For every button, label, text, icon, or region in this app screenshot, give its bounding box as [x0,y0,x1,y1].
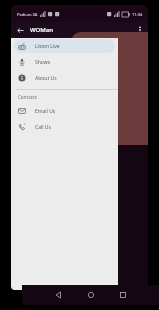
button[interactable]: Shows [14,55,115,69]
staticText: Shows [35,59,51,66]
staticText: About Us [35,75,57,82]
button[interactable]: Back [51,287,67,303]
button[interactable]: Home [83,287,99,303]
button[interactable]: Listen Live [14,39,115,53]
staticText: Listen Live [35,43,60,50]
button[interactable]: Email Us [14,104,115,118]
button[interactable]: More options [133,23,147,37]
staticText: Call Us [35,124,51,131]
staticText: WOMan [30,26,53,34]
staticText: Contacts [18,94,37,100]
staticText: Email Us [35,108,56,115]
button[interactable]: Back [13,23,27,37]
button[interactable]: Recent apps [115,287,131,303]
button[interactable]: About Us [14,71,115,85]
button[interactable]: Call Us [14,120,115,134]
staticText: 11:04 [132,12,143,17]
staticText: Podium 3A [17,12,38,17]
